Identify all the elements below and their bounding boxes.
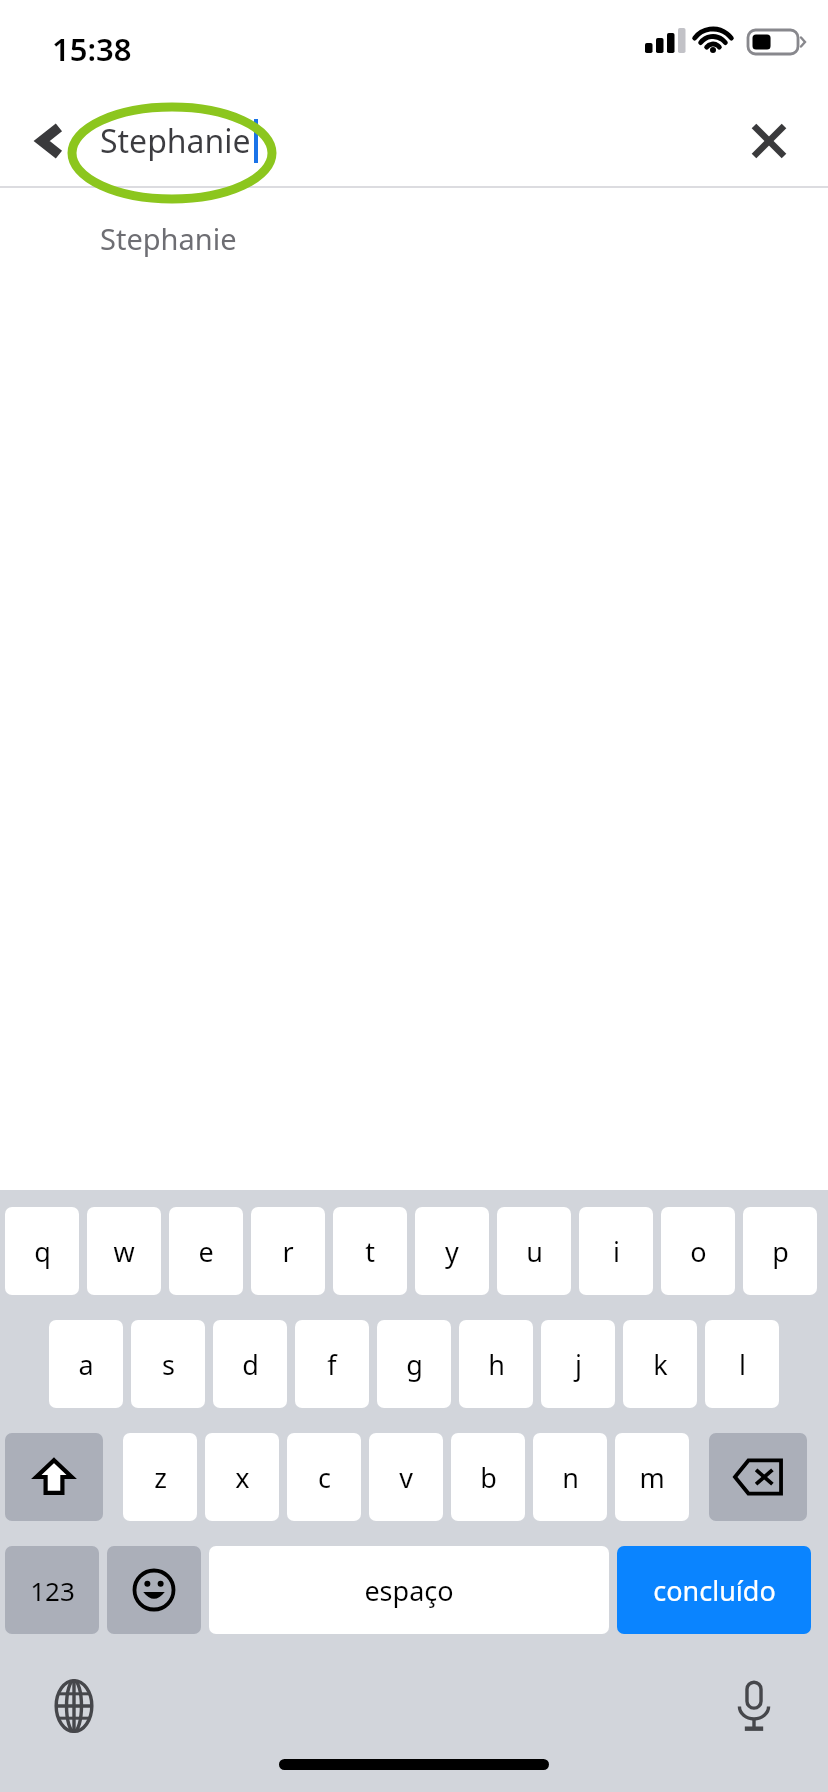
button[interactable]: p [743, 1207, 817, 1295]
staticText: m [639, 1459, 665, 1496]
staticText: 15:38 [52, 28, 132, 70]
staticText: g [406, 1346, 423, 1383]
button[interactable]: espaço [209, 1546, 609, 1634]
button[interactable]: j [541, 1320, 615, 1408]
button[interactable]: i [579, 1207, 653, 1295]
staticText: espaço [364, 1572, 454, 1609]
button[interactable]: m [615, 1433, 689, 1521]
button[interactable]: Stephanie [100, 105, 258, 177]
button[interactable]: x [205, 1433, 279, 1521]
staticText: q [34, 1233, 51, 1270]
button[interactable]: Clear search [736, 108, 802, 174]
button[interactable]: l [705, 1320, 779, 1408]
button[interactable]: a [49, 1320, 123, 1408]
staticText: v [399, 1459, 413, 1496]
staticText: z [154, 1459, 167, 1496]
button[interactable]: 123 [5, 1546, 99, 1634]
staticText: j [575, 1346, 582, 1383]
button[interactable]: y [415, 1207, 489, 1295]
button[interactable]: z [123, 1433, 197, 1521]
staticText: o [690, 1233, 707, 1270]
button[interactable]: Dictation [718, 1670, 790, 1742]
staticText: 123 [30, 1573, 75, 1608]
staticText: f [327, 1346, 337, 1383]
staticText: k [653, 1346, 668, 1383]
button[interactable]: Shift [5, 1433, 103, 1521]
button[interactable]: concluído [617, 1546, 811, 1634]
staticText: b [480, 1459, 497, 1496]
button[interactable]: c [287, 1433, 361, 1521]
staticText: w [113, 1233, 135, 1270]
button[interactable]: s [131, 1320, 205, 1408]
staticText: x [235, 1459, 250, 1496]
staticText: p [772, 1233, 789, 1270]
button[interactable]: Stephanie [0, 188, 828, 288]
button[interactable]: k [623, 1320, 697, 1408]
staticText: c [318, 1459, 331, 1496]
staticText: y [445, 1233, 459, 1270]
staticText: u [526, 1233, 543, 1270]
button[interactable]: g [377, 1320, 451, 1408]
staticText: a [78, 1346, 94, 1383]
button[interactable]: f [295, 1320, 369, 1408]
button[interactable]: n [533, 1433, 607, 1521]
staticText: l [739, 1346, 746, 1383]
button[interactable]: Backspace [709, 1433, 807, 1521]
staticText: n [562, 1459, 579, 1496]
staticText: Stephanie [100, 119, 251, 163]
staticText: e [198, 1233, 214, 1270]
button[interactable]: o [661, 1207, 735, 1295]
button[interactable]: Next keyboard [38, 1670, 110, 1742]
staticText: d [242, 1346, 259, 1383]
staticText: r [282, 1233, 294, 1270]
button[interactable]: q [5, 1207, 79, 1295]
button[interactable]: w [87, 1207, 161, 1295]
button[interactable]: b [451, 1433, 525, 1521]
button[interactable]: e [169, 1207, 243, 1295]
staticText: s [162, 1346, 175, 1383]
button[interactable]: Emoji [107, 1546, 201, 1634]
button[interactable]: d [213, 1320, 287, 1408]
staticText: h [488, 1346, 505, 1383]
staticText: concluído [653, 1572, 776, 1609]
staticText: i [613, 1233, 620, 1270]
button[interactable]: v [369, 1433, 443, 1521]
button[interactable]: u [497, 1207, 571, 1295]
button[interactable]: Back [20, 110, 82, 172]
button[interactable]: t [333, 1207, 407, 1295]
button[interactable]: h [459, 1320, 533, 1408]
staticText: Stephanie [100, 219, 237, 258]
button[interactable]: r [251, 1207, 325, 1295]
staticText: t [365, 1233, 375, 1270]
